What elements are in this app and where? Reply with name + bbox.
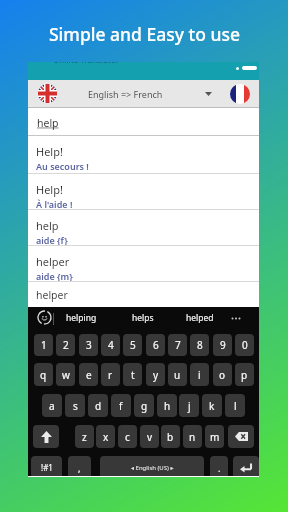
staticText: f [119, 399, 123, 413]
staticText: Help! [36, 144, 63, 159]
button[interactable] [33, 425, 59, 448]
staticText: 5 [130, 338, 136, 352]
button[interactable]: s [65, 394, 85, 417]
button[interactable] [228, 425, 254, 448]
button[interactable]: 1 [34, 334, 53, 356]
button[interactable]: helper [28, 246, 259, 281]
button[interactable]: . [210, 456, 228, 476]
staticText: helper [36, 288, 68, 302]
staticText: i [198, 368, 201, 382]
button[interactable]: u [168, 363, 187, 386]
staticText: u [174, 368, 181, 382]
staticText: a [49, 399, 55, 413]
button[interactable]: n [183, 425, 202, 448]
staticText: Online Translator [53, 62, 120, 65]
button[interactable]: ◂ English (US) ▸ [100, 456, 204, 476]
button[interactable]: English => French [28, 80, 259, 107]
button[interactable]: l [225, 394, 245, 417]
button[interactable]: 0 [235, 334, 254, 356]
button[interactable]: helping [66, 312, 97, 324]
button[interactable]: b [161, 425, 180, 448]
staticText: c [125, 430, 130, 444]
button[interactable]: k [202, 394, 222, 417]
button[interactable]: e [79, 363, 98, 386]
staticText: 4 [108, 338, 114, 352]
button[interactable]: t [123, 363, 142, 386]
button[interactable]: helps [132, 312, 154, 324]
button[interactable]: 3 [79, 334, 98, 356]
staticText: English => French [88, 88, 163, 100]
staticText: , [78, 462, 81, 474]
staticText: 0 [242, 338, 248, 352]
staticText: !#1 [41, 462, 53, 473]
button[interactable]: g [134, 394, 154, 417]
button[interactable]: help [28, 210, 259, 245]
staticText: s [73, 399, 78, 413]
staticText: z [82, 430, 87, 444]
button[interactable]: c [118, 425, 137, 448]
button[interactable]: d [88, 394, 108, 417]
button[interactable]: q [34, 363, 53, 386]
button[interactable]: h [157, 394, 177, 417]
staticText: v [147, 430, 153, 444]
staticText: n [189, 430, 196, 444]
staticText: 7 [175, 338, 181, 352]
staticText: o [219, 368, 226, 382]
button[interactable]: p [235, 363, 254, 386]
staticText: g [141, 399, 148, 413]
button[interactable]: y [146, 363, 165, 386]
staticText: k [209, 399, 215, 413]
button[interactable]: 7 [168, 334, 187, 356]
staticText: 2 [63, 338, 69, 352]
staticText: q [40, 368, 47, 382]
staticText: ◂ English (US) ▸ [131, 464, 174, 472]
staticText: À l'aide ! [36, 198, 73, 209]
button[interactable]: 2 [56, 334, 75, 356]
staticText: l [234, 399, 237, 413]
button[interactable]: m [205, 425, 224, 448]
button[interactable]: 4 [101, 334, 120, 356]
staticText: aide {m} [36, 270, 73, 281]
button[interactable]: o [213, 363, 232, 386]
button[interactable]: 5 [123, 334, 142, 356]
staticText: r [108, 368, 113, 382]
staticText: 8 [197, 338, 203, 352]
button[interactable]: 6 [146, 334, 165, 356]
staticText: 6 [153, 338, 159, 352]
staticText: j [188, 399, 191, 413]
staticText: w [62, 368, 70, 382]
staticText: y [153, 368, 159, 382]
staticText: help [37, 116, 59, 130]
staticText: help [36, 218, 59, 233]
button[interactable]: , [68, 456, 91, 476]
staticText: m [210, 430, 220, 444]
button[interactable]: 9 [213, 334, 232, 356]
button[interactable]: helped [186, 312, 214, 324]
button[interactable]: Help! [28, 174, 259, 209]
button[interactable]: z [75, 425, 94, 448]
button[interactable]: 8 [190, 334, 209, 356]
staticText: e [86, 368, 92, 382]
button[interactable]: f [111, 394, 131, 417]
button[interactable]: x [96, 425, 115, 448]
button[interactable]: !#1 [31, 456, 62, 476]
button[interactable]: j [179, 394, 199, 417]
button[interactable] [233, 456, 259, 476]
staticText: helper [36, 254, 70, 269]
staticText: 3 [86, 338, 92, 352]
staticText: t [131, 368, 135, 382]
button[interactable]: i [190, 363, 209, 386]
staticText: x [103, 430, 109, 444]
button[interactable]: r [101, 363, 120, 386]
button[interactable]: v [140, 425, 159, 448]
staticText: Help! [36, 182, 63, 197]
button[interactable]: a [42, 394, 62, 417]
staticText: 9 [220, 338, 226, 352]
button[interactable]: w [56, 363, 75, 386]
staticText: d [95, 399, 102, 413]
button[interactable]: Help! [28, 136, 259, 173]
staticText: 1 [41, 338, 47, 352]
staticText: Au secours ! [36, 160, 89, 172]
staticText: b [167, 430, 174, 444]
staticText: Simple and Easy to use [49, 22, 240, 46]
